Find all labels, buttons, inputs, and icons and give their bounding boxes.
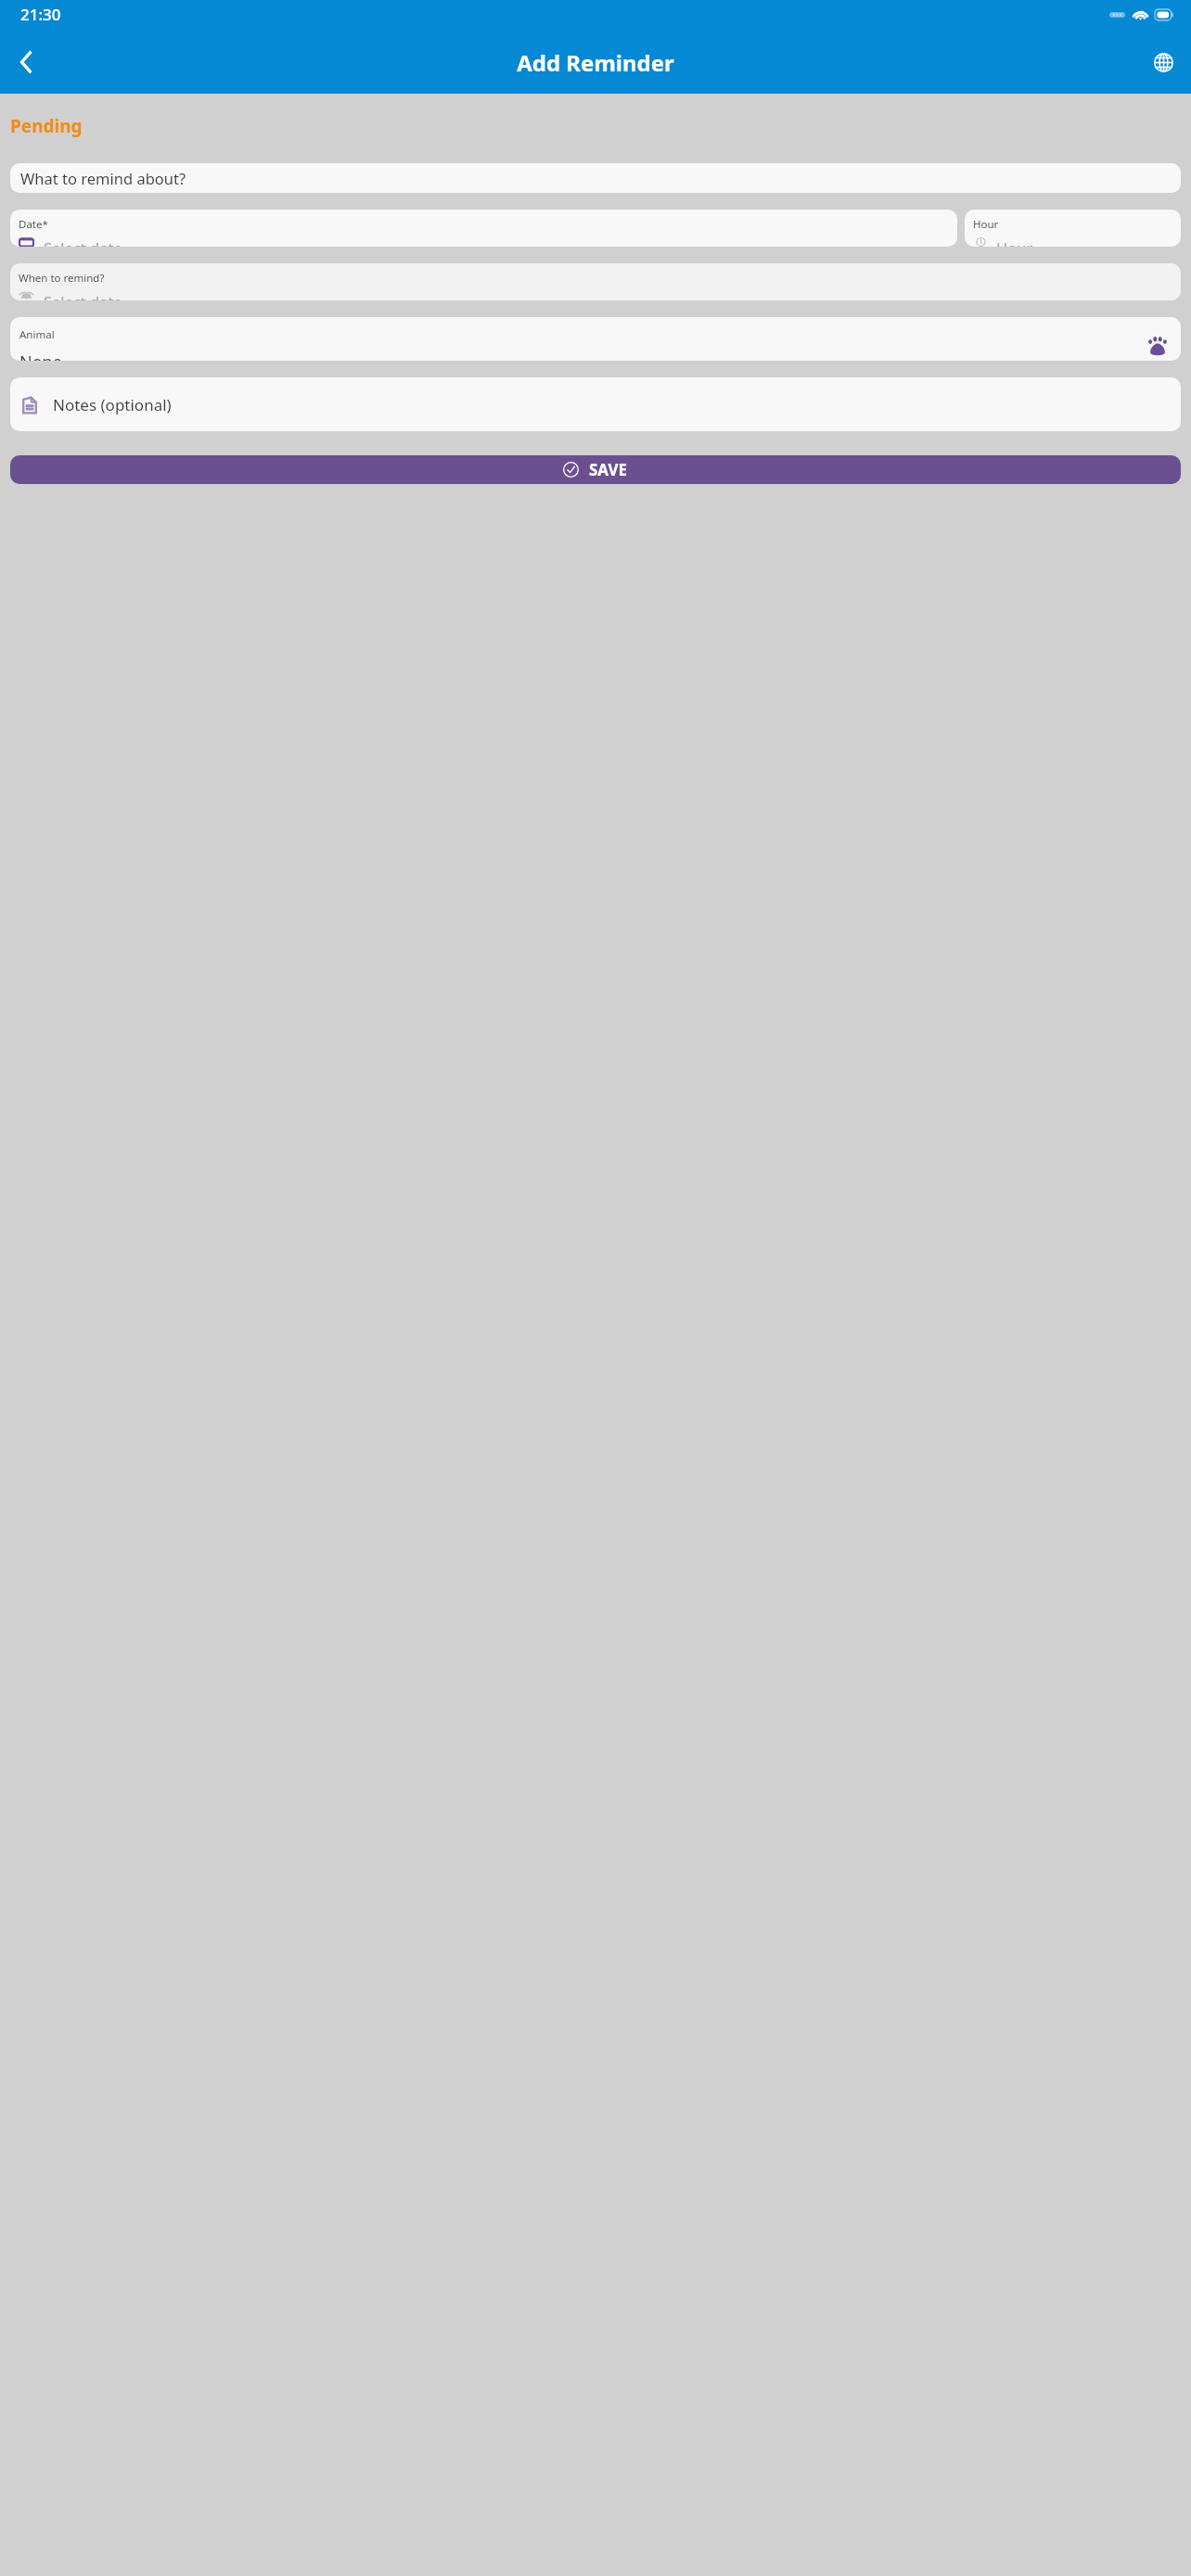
staticText: Hour (996, 237, 1033, 247)
staticText: None (19, 351, 62, 361)
button[interactable]: Language (1143, 42, 1184, 83)
button[interactable]: What to remind about? (10, 163, 1181, 193)
staticText: 21:30 (20, 4, 61, 25)
staticText: SAVE (589, 459, 628, 480)
staticText: Animal (19, 327, 55, 342)
staticText: Select date (44, 237, 122, 247)
staticText: What to remind about? (20, 168, 186, 188)
staticText: Add Reminder (517, 47, 674, 78)
button[interactable]: Back (6, 42, 46, 83)
button[interactable]: Notes (optional) (10, 377, 1181, 431)
button[interactable]: Animal (10, 317, 1181, 361)
staticText: Date* (19, 217, 48, 232)
staticText: Pending (10, 114, 83, 138)
staticText: Hour (973, 217, 999, 232)
staticText: Select date (44, 291, 122, 300)
button[interactable]: SAVE (10, 455, 1181, 484)
staticText: When to remind? (19, 271, 105, 286)
button[interactable]: Date* (10, 210, 957, 247)
button[interactable]: When to remind? (10, 263, 1181, 300)
button[interactable]: Hour (965, 210, 1181, 247)
staticText: Notes (optional) (53, 394, 172, 415)
